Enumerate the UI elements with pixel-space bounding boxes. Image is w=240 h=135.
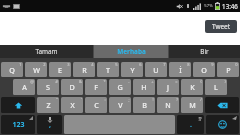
staticText: ': [81, 97, 82, 102]
staticText: +: [151, 79, 154, 84]
staticText: A: [22, 82, 27, 92]
staticText: G: [117, 82, 123, 92]
staticText: C: [94, 100, 99, 110]
staticText: ,: [49, 120, 51, 130]
staticText: !?: [198, 116, 202, 122]
staticText: 6: [139, 62, 142, 67]
button[interactable]: J: [157, 79, 179, 95]
staticText: E: [58, 65, 62, 75]
staticText: .: [190, 120, 192, 130]
staticText: 5: [115, 62, 118, 67]
button[interactable]: Backspace: [205, 97, 239, 113]
button[interactable]: İ: [169, 62, 191, 77]
button[interactable]: M: [181, 97, 203, 113]
button[interactable]: Emoji: [206, 115, 239, 134]
staticText: 123: [12, 120, 25, 130]
staticText: O: [201, 65, 207, 75]
button[interactable]: Tweet: [205, 20, 237, 33]
button[interactable]: O: [193, 62, 215, 77]
staticText: #: [55, 79, 58, 84]
staticText: Z: [46, 100, 51, 110]
staticText: ): [224, 79, 226, 84]
button[interactable]: N: [157, 97, 179, 113]
staticText: *: [103, 79, 106, 84]
staticText: 4: [91, 62, 94, 67]
staticText: 57%: [204, 3, 213, 9]
button[interactable]: E: [49, 62, 71, 77]
staticText: D: [69, 82, 75, 92]
staticText: N: [165, 100, 171, 110]
button[interactable]: L: [205, 79, 227, 95]
button[interactable]: 123: [1, 115, 35, 134]
button[interactable]: Z: [37, 97, 59, 113]
staticText: (: [200, 79, 202, 84]
staticText: @: [30, 79, 34, 84]
staticText: P: [226, 65, 231, 75]
button[interactable]: Shift: [1, 97, 35, 113]
staticText: Y: [130, 65, 135, 75]
button[interactable]: A: [13, 79, 35, 95]
staticText: Tamam: [35, 47, 58, 56]
button[interactable]: Merhaba: [94, 45, 168, 58]
staticText: 0: [235, 62, 238, 67]
button[interactable]: Period and punctuation: [177, 115, 204, 134]
staticText: K: [190, 82, 195, 92]
staticText: 3: [67, 62, 70, 67]
button[interactable]: T: [97, 62, 119, 77]
button[interactable]: P: [217, 62, 239, 77]
staticText: Tweet: [212, 22, 230, 31]
staticText: ": [56, 97, 58, 102]
button[interactable]: S: [37, 79, 59, 95]
button[interactable]: G: [109, 79, 131, 95]
button[interactable]: K: [181, 79, 203, 95]
staticText: F: [94, 82, 98, 92]
staticText: U: [153, 65, 159, 75]
staticText: 1: [19, 62, 22, 67]
staticText: :: [104, 97, 106, 102]
button[interactable]: Y: [121, 62, 143, 77]
staticText: 2: [43, 62, 46, 67]
staticText: L: [214, 82, 218, 92]
staticText: 13:46: [222, 2, 238, 10]
button[interactable]: D: [61, 79, 83, 95]
staticText: !: [152, 97, 154, 102]
staticText: S: [46, 82, 50, 92]
staticText: 7: [163, 62, 166, 67]
staticText: Bir: [200, 47, 209, 56]
staticText: 8: [187, 62, 190, 67]
staticText: W: [33, 65, 40, 75]
staticText: ;: [128, 97, 130, 102]
staticText: J: [167, 82, 169, 92]
staticText: ?: [176, 97, 178, 102]
staticText: /: [200, 97, 202, 102]
staticText: M: [189, 100, 196, 110]
staticText: R: [82, 65, 87, 75]
staticText: V: [118, 100, 123, 110]
button[interactable]: U: [145, 62, 167, 77]
staticText: T: [106, 65, 110, 75]
staticText: -: [128, 79, 130, 84]
button[interactable]: C: [85, 97, 107, 113]
staticText: H: [141, 82, 147, 92]
staticText: B: [142, 100, 147, 110]
button[interactable]: Comma and voice input: [37, 115, 62, 134]
staticText: Merhaba: [117, 47, 146, 56]
button[interactable]: V: [109, 97, 131, 113]
button[interactable]: F: [85, 79, 107, 95]
button[interactable]: X: [61, 97, 83, 113]
staticText: Q: [9, 65, 15, 75]
staticText: 9: [211, 62, 214, 67]
staticText: &: [79, 79, 82, 84]
button[interactable]: Tamam: [0, 45, 93, 58]
staticText: İ: [179, 65, 182, 75]
staticText: X: [70, 100, 75, 110]
staticText: =: [175, 79, 178, 84]
button[interactable]: Q: [1, 62, 23, 77]
button[interactable]: H: [133, 79, 155, 95]
button[interactable]: W: [25, 62, 47, 77]
button[interactable]: B: [133, 97, 155, 113]
button[interactable]: R: [73, 62, 95, 77]
button[interactable]: Bir: [169, 45, 240, 58]
